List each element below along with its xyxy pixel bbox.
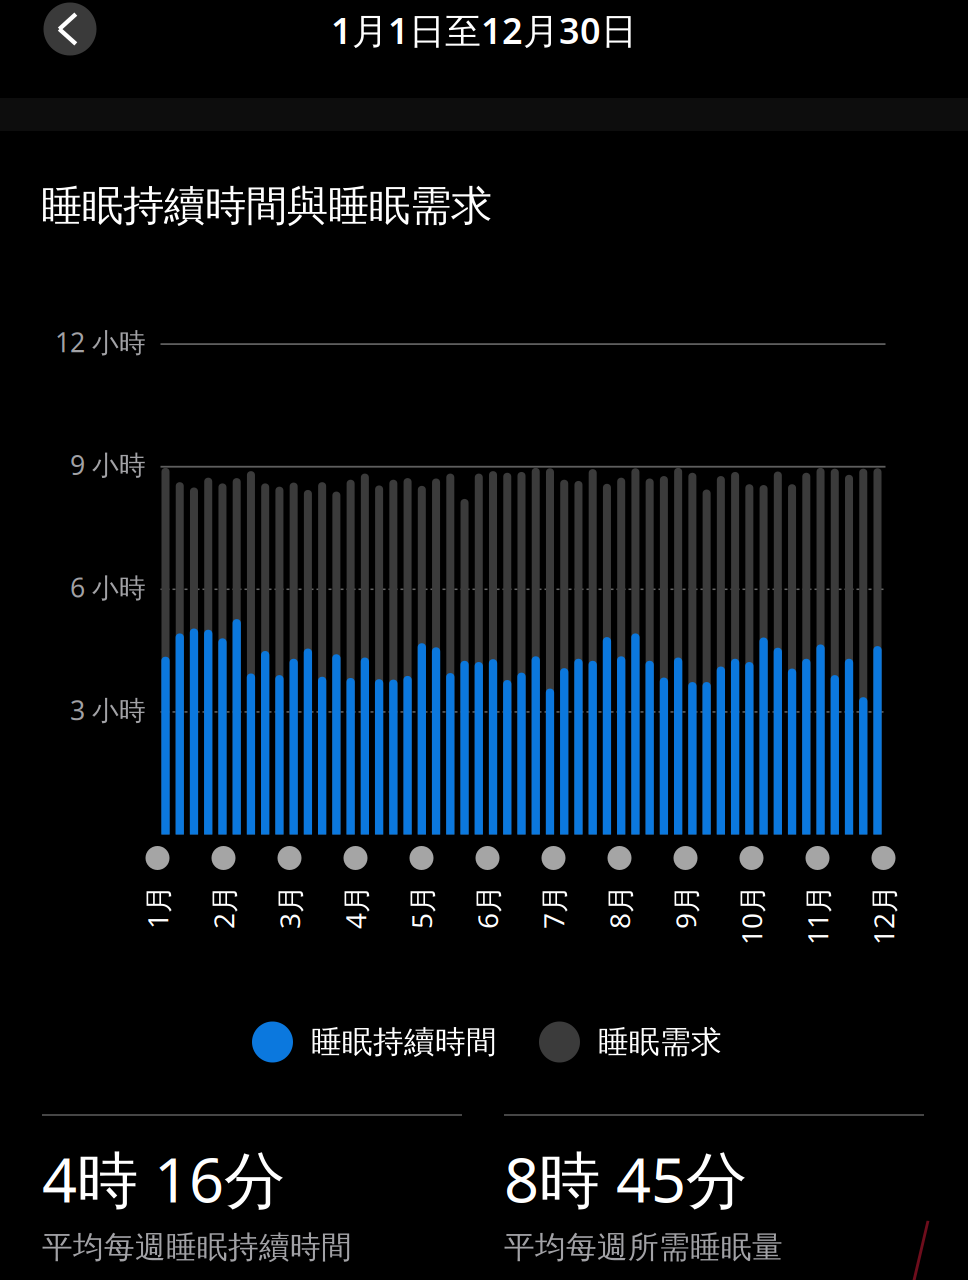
staticText: 12月: [883, 926, 943, 964]
staticText: 10月: [751, 926, 811, 964]
staticText: 1月: [173, 926, 217, 964]
staticText: 11月: [817, 926, 877, 964]
staticText: 睡眠需求: [598, 1023, 722, 1061]
staticText: 6 小時: [70, 569, 146, 605]
staticText: 睡眠持續時間: [311, 1023, 497, 1061]
staticText: 平均每週睡眠持續時間: [42, 1228, 352, 1266]
staticText: 12 小時: [55, 324, 146, 360]
staticText: 9月: [701, 926, 745, 964]
staticText: 2月: [239, 926, 283, 964]
button[interactable]: 返回: [43, 2, 96, 55]
staticText: 6月: [503, 926, 547, 964]
staticText: 4時 16分: [42, 1138, 285, 1219]
staticText: 平均每週所需睡眠量: [504, 1228, 783, 1266]
staticText: 8月: [635, 926, 679, 964]
staticText: 7月: [569, 926, 613, 964]
staticText: 1月1日至12月30日: [331, 6, 637, 54]
staticText: 睡眠持續時間與睡眠需求: [41, 181, 492, 231]
staticText: 8時 45分: [504, 1138, 747, 1219]
staticText: 3 小時: [70, 692, 146, 728]
staticText: 9 小時: [70, 447, 146, 482]
